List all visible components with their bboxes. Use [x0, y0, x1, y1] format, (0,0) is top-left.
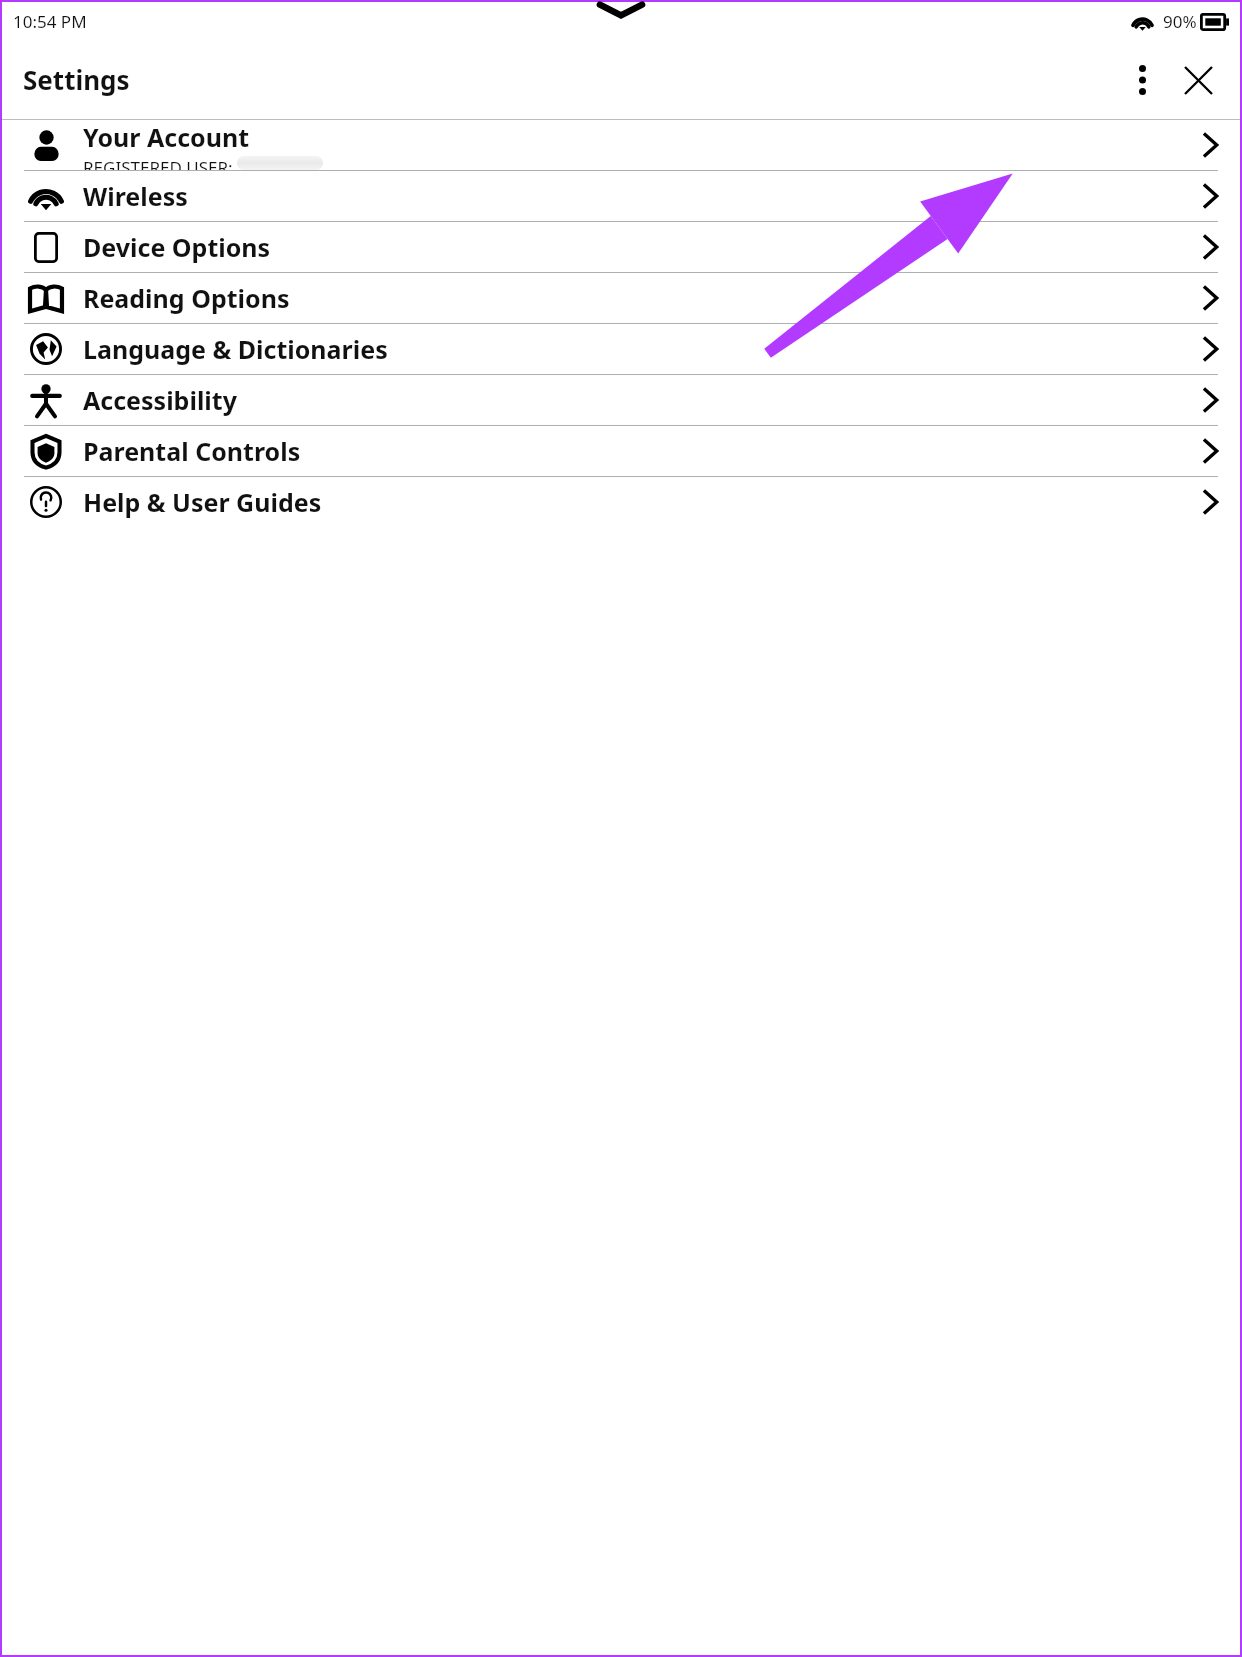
staticText: 10:54 PM	[13, 10, 87, 33]
button[interactable]: Close	[1174, 56, 1222, 104]
staticText: Help & User Guides	[83, 485, 322, 519]
staticText: REGISTERED USER:	[83, 156, 233, 170]
staticText: Settings	[23, 62, 130, 97]
button[interactable]: Parental Controls	[2, 426, 1240, 476]
button[interactable]: More options	[1120, 58, 1164, 102]
staticText: Device Options	[83, 230, 271, 264]
staticText: Your Account	[83, 120, 250, 154]
button[interactable]: Accessibility	[2, 375, 1240, 425]
button[interactable]: Reading Options	[2, 273, 1240, 323]
button[interactable]: Help & User Guides	[2, 477, 1240, 527]
staticText: Reading Options	[83, 281, 290, 315]
staticText: Parental Controls	[83, 434, 301, 468]
button[interactable]: Device Options	[2, 222, 1240, 272]
staticText: Wireless	[83, 179, 188, 213]
button[interactable]: Wireless	[2, 171, 1240, 221]
staticText: Accessibility	[83, 383, 237, 417]
staticText: Language & Dictionaries	[83, 332, 388, 366]
staticText: 90%	[1163, 10, 1197, 33]
button[interactable]: Language & Dictionaries	[2, 324, 1240, 374]
button[interactable]: Your Account	[2, 120, 1240, 170]
